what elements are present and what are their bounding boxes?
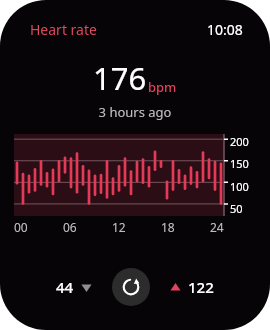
staticText: 100 [230,179,249,194]
staticText: 24 [210,219,224,235]
staticText: 3 hours ago [0,103,270,121]
staticText: bpm [148,78,177,96]
button[interactable]: Refresh [112,268,150,306]
staticText: Heart rate [30,20,97,39]
staticText: 200 [230,134,249,149]
staticText: 00 [14,219,28,235]
staticText: 10:08 [207,20,243,39]
staticText: 176 [93,57,147,99]
staticText: 44 [56,277,74,297]
staticText: 50 [230,201,243,216]
staticText: 18 [161,219,175,235]
button[interactable]: 44 [52,271,96,303]
button[interactable]: 122 [166,271,218,303]
staticText: 122 [188,277,214,297]
staticText: 06 [63,219,77,235]
staticText: 150 [230,156,249,171]
staticText: 12 [112,219,126,235]
